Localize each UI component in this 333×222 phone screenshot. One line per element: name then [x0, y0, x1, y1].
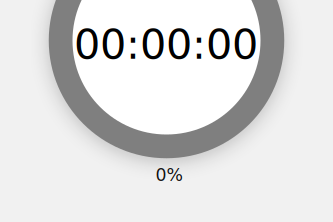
- button[interactable]: Timer, 0 percent elapsed: [49, 0, 284, 158]
- staticText: 00:00:00: [74, 20, 258, 68]
- staticText: 0%: [155, 165, 182, 185]
